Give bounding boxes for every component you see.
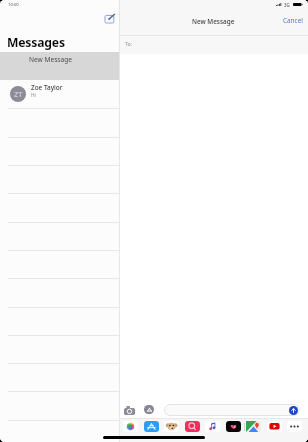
button[interactable] [0,250,119,278]
staticText: Hi [31,92,36,99]
button[interactable]: Music [205,421,220,432]
button[interactable]: Cancel [279,14,306,27]
button[interactable] [0,108,119,136]
button[interactable] [0,420,119,442]
button[interactable] [164,404,300,416]
button[interactable] [0,363,119,391]
button[interactable]: Apps [144,405,154,414]
button[interactable] [0,278,119,306]
button[interactable]: YouTube [267,421,282,432]
staticText: 3G [284,2,290,8]
button[interactable]: Images [185,421,200,432]
button[interactable] [0,165,119,193]
staticText: Zoe Taylor [31,83,63,92]
staticText: New Message [29,55,72,64]
button[interactable]: Camera [124,406,135,415]
button[interactable]: More [287,421,302,432]
staticText: New Message [192,17,235,26]
staticText: Messages [7,34,65,51]
button[interactable]: Send [289,406,298,415]
button[interactable]: Maps [246,421,261,432]
staticText: To: [125,41,132,48]
button[interactable]: ZT [0,80,119,108]
button[interactable]: New Message [0,52,119,80]
button[interactable]: Memoji [164,421,179,432]
button[interactable] [0,307,119,335]
button[interactable] [0,222,119,250]
button[interactable]: Fitness [226,421,241,432]
button[interactable]: App Store [144,421,159,432]
button[interactable] [0,335,119,363]
button[interactable] [0,137,119,165]
staticText: ZT [14,89,23,99]
button[interactable] [0,391,119,419]
staticText: 10:00 [8,2,19,8]
button[interactable]: Photos [123,421,138,432]
staticText: Cancel [283,16,303,25]
button[interactable] [0,193,119,221]
button[interactable]: New message [100,9,118,26]
